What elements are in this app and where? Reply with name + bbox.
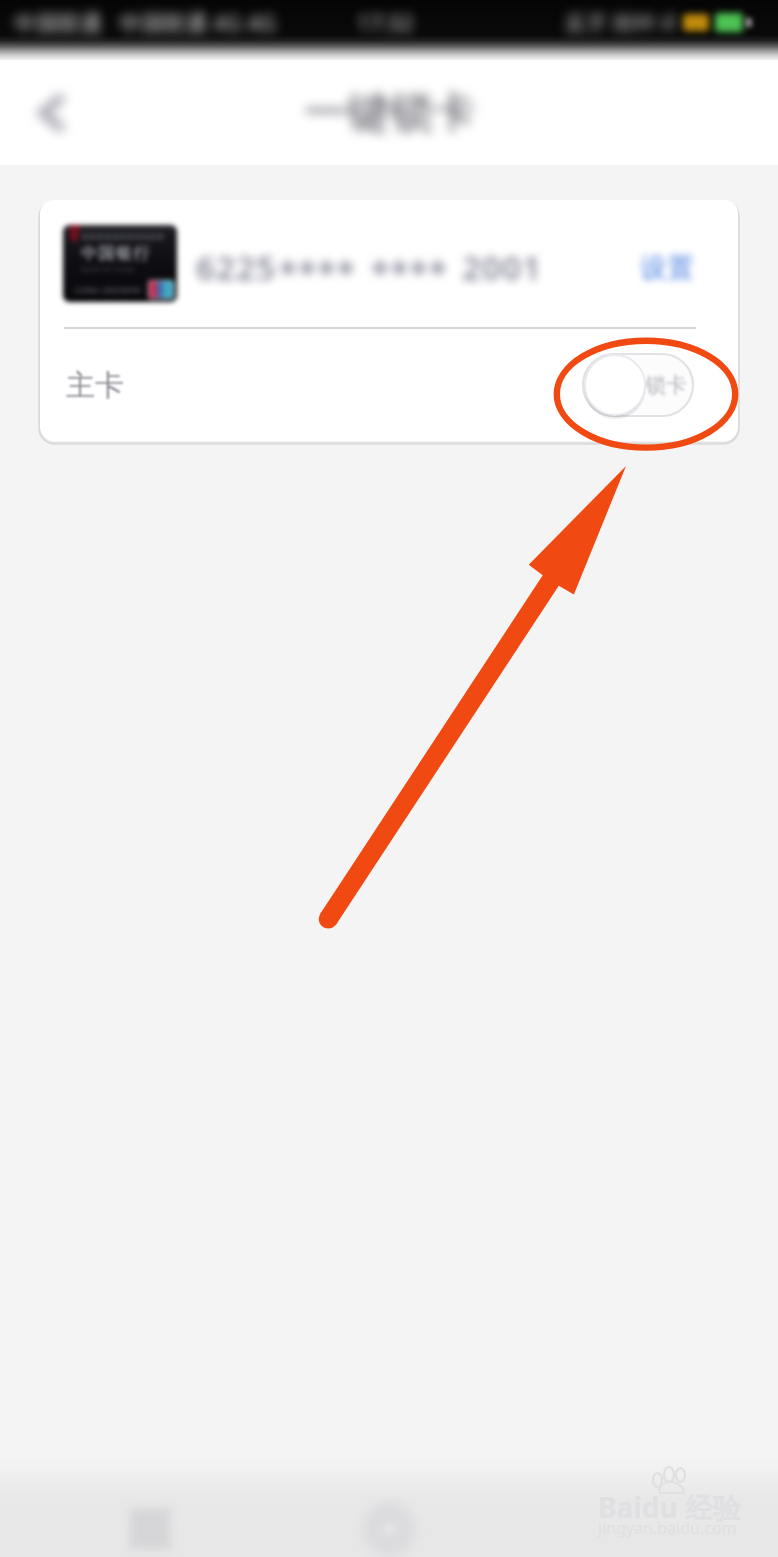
staticText: BANK OF CHINA xyxy=(81,265,135,275)
button[interactable]: ■■■■■■■■■■■ xyxy=(40,200,738,327)
staticText: Baidu 经验 xyxy=(598,1488,741,1526)
button[interactable]: Home xyxy=(345,1485,433,1557)
staticText: 蓝牙 闹钟 ıll xyxy=(565,8,677,37)
staticText: ■■■■■■■■■■■ xyxy=(81,232,165,241)
button[interactable]: Back xyxy=(584,1485,672,1557)
staticText: 17:32 xyxy=(357,7,414,37)
staticText: 中国联通 中国联通 4G 4G xyxy=(14,7,276,37)
staticText: 设置 xyxy=(640,251,694,285)
staticText: 锁卡 xyxy=(645,372,687,398)
staticText: **** xyxy=(371,250,448,295)
staticText: 中国银行 xyxy=(81,244,151,264)
staticText: 主卡 xyxy=(66,367,124,404)
staticText: CHINA UNIONPAY xyxy=(74,285,142,296)
button[interactable]: Back xyxy=(8,71,92,155)
button[interactable]: 设置 xyxy=(640,251,694,285)
staticText: **** xyxy=(279,250,356,295)
staticText: 2001 xyxy=(462,245,543,290)
button[interactable]: 锁卡 xyxy=(583,354,693,416)
button[interactable]: Recent apps xyxy=(106,1485,194,1557)
staticText: 6225 xyxy=(196,245,277,290)
staticText: 一键锁卡 xyxy=(304,86,476,140)
